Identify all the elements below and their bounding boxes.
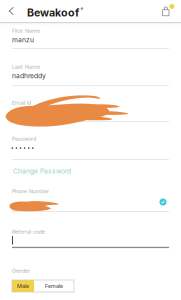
staticText: Last Name [12,63,40,70]
staticText: manzu [12,36,34,44]
staticText: Change Password [13,167,71,175]
button[interactable]: Female [34,280,74,292]
button[interactable]: Change Password [13,166,75,175]
button[interactable]: Shopping bag [157,0,179,20]
staticText: Gender [12,267,30,274]
staticText: Password [12,135,36,142]
staticText: First Name [12,27,40,34]
staticText: Phone Number [12,188,49,194]
button[interactable]: Back [0,0,22,22]
staticText: Bewakoof [27,6,79,19]
staticText: Female [45,283,63,289]
staticText: nadhreddy [12,72,46,80]
staticText: Referral code [12,228,45,235]
button[interactable]: Male [12,280,34,292]
staticText: Male [17,283,29,289]
staticText: ® [80,6,83,11]
staticText: Email Id [12,99,31,106]
